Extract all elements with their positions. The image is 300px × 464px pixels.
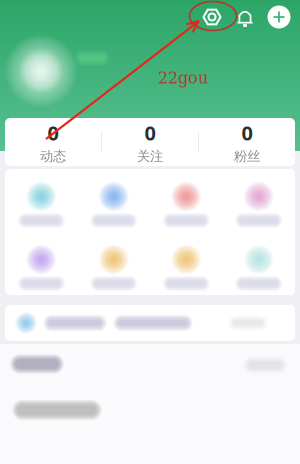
button[interactable] — [77, 232, 150, 295]
button[interactable] — [5, 305, 295, 341]
button[interactable]: Notifications — [237, 8, 252, 26]
button[interactable] — [222, 169, 295, 232]
button[interactable] — [5, 169, 77, 232]
button[interactable] — [150, 232, 222, 295]
button[interactable]: 0 — [199, 118, 295, 166]
button[interactable] — [222, 232, 295, 295]
staticText: 动态 — [40, 148, 66, 164]
button[interactable] — [77, 169, 150, 232]
staticText: 粉丝 — [234, 148, 260, 164]
staticText: 22gou — [158, 69, 208, 87]
button[interactable]: 0 — [102, 118, 198, 166]
button[interactable]: Add — [267, 5, 291, 29]
staticText: 关注 — [137, 148, 163, 164]
button[interactable]: Profile photo — [5, 35, 77, 107]
staticText: 0 — [144, 119, 155, 146]
staticText: 0 — [47, 119, 58, 146]
button[interactable]: Settings — [202, 7, 221, 26]
staticText: 0 — [241, 119, 252, 146]
button[interactable] — [150, 169, 222, 232]
button[interactable] — [5, 232, 77, 295]
button[interactable]: 0 — [5, 118, 101, 166]
